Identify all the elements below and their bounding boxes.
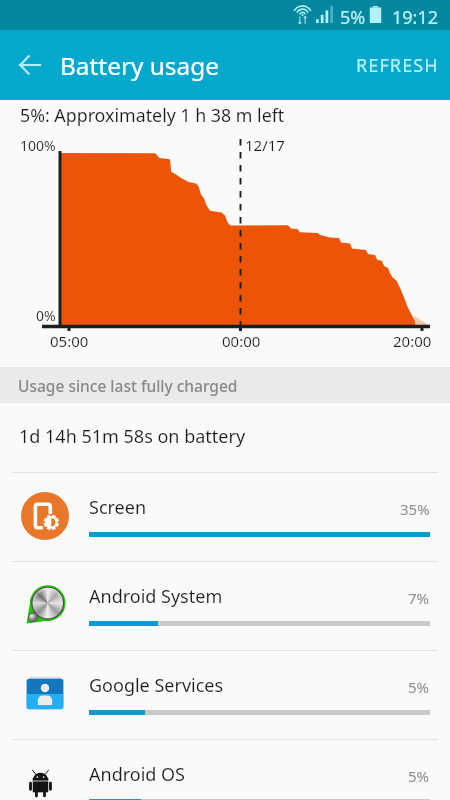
staticText: Google Services: [89, 673, 224, 698]
button[interactable]: REFRESH: [341, 39, 450, 92]
button[interactable]: Android OS: [0, 739, 450, 800]
staticText: 0%: [36, 306, 56, 325]
staticText: 05:00: [50, 331, 89, 351]
staticText: Usage since last fully charged: [18, 375, 238, 396]
staticText: 35%: [400, 499, 430, 519]
staticText: 5%: Approximately 1 h 38 m left: [20, 103, 285, 127]
staticText: 7%: [408, 588, 430, 608]
staticText: Screen: [89, 495, 147, 520]
staticText: Android System: [89, 584, 223, 609]
button[interactable]: Back: [10, 45, 50, 85]
staticText: Android OS: [89, 762, 185, 787]
button[interactable]: Google Services: [0, 650, 450, 739]
staticText: 20:00: [393, 331, 432, 351]
staticText: 5%: [408, 766, 430, 786]
staticText: 19:12: [392, 5, 439, 30]
button[interactable]: Screen: [0, 472, 450, 561]
staticText: 5%: [340, 5, 366, 30]
staticText: Battery usage: [60, 49, 219, 82]
staticText: REFRESH: [356, 53, 439, 78]
staticText: 12/17: [245, 135, 285, 155]
staticText: 1d 14h 51m 58s on battery: [19, 424, 246, 449]
staticText: 00:00: [222, 331, 261, 351]
button[interactable]: Android System: [0, 561, 450, 650]
staticText: 100%: [20, 136, 56, 155]
staticText: 5%: [408, 677, 430, 697]
